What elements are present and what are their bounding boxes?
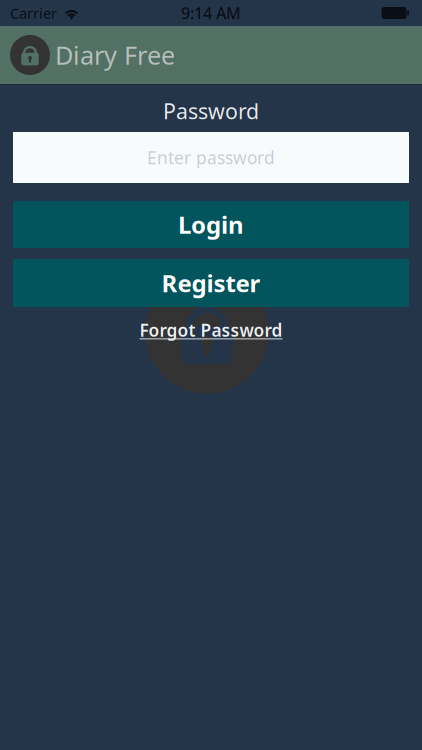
staticText: Forgot Password: [139, 318, 282, 341]
staticText: 9:14 AM: [181, 2, 241, 24]
staticText: Diary Free: [55, 38, 175, 72]
button[interactable]: Register: [13, 259, 409, 307]
staticText: Login: [178, 209, 244, 240]
staticText: Carrier: [10, 3, 57, 23]
staticText: Enter password: [147, 146, 275, 169]
button[interactable]: Enter password: [13, 132, 409, 183]
staticText: Password: [163, 97, 259, 125]
button[interactable]: Forgot Password: [139, 317, 282, 343]
staticText: Register: [161, 267, 260, 299]
button[interactable]: Login: [13, 201, 409, 248]
